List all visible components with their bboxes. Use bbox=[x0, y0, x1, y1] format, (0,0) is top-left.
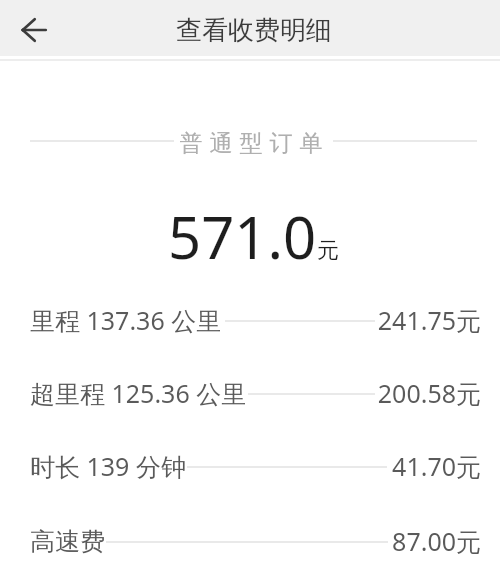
button[interactable]: Back bbox=[10, 6, 58, 54]
button[interactable]: 时长 139 分钟 bbox=[0, 430, 500, 502]
staticText: 普通型订单 bbox=[176, 129, 326, 158]
staticText: 241.75元 bbox=[377, 303, 481, 337]
staticText: 时长 139 分钟 bbox=[30, 449, 186, 483]
staticText: 87.00元 bbox=[392, 524, 481, 558]
button[interactable]: 高速费 bbox=[0, 505, 500, 567]
staticText: 571.0 bbox=[168, 197, 317, 267]
staticText: 里程 137.36 公里 bbox=[30, 303, 222, 337]
staticText: 41.70元 bbox=[392, 449, 481, 483]
staticText: 高速费 bbox=[30, 526, 105, 557]
staticText: 元 bbox=[317, 237, 339, 265]
staticText: 查看收费明细 bbox=[176, 14, 332, 47]
button[interactable]: 里程 137.36 公里 bbox=[0, 284, 500, 356]
button[interactable]: 超里程 125.36 公里 bbox=[0, 357, 500, 429]
staticText: 超里程 125.36 公里 bbox=[30, 376, 247, 410]
staticText: 200.58元 bbox=[377, 376, 481, 410]
